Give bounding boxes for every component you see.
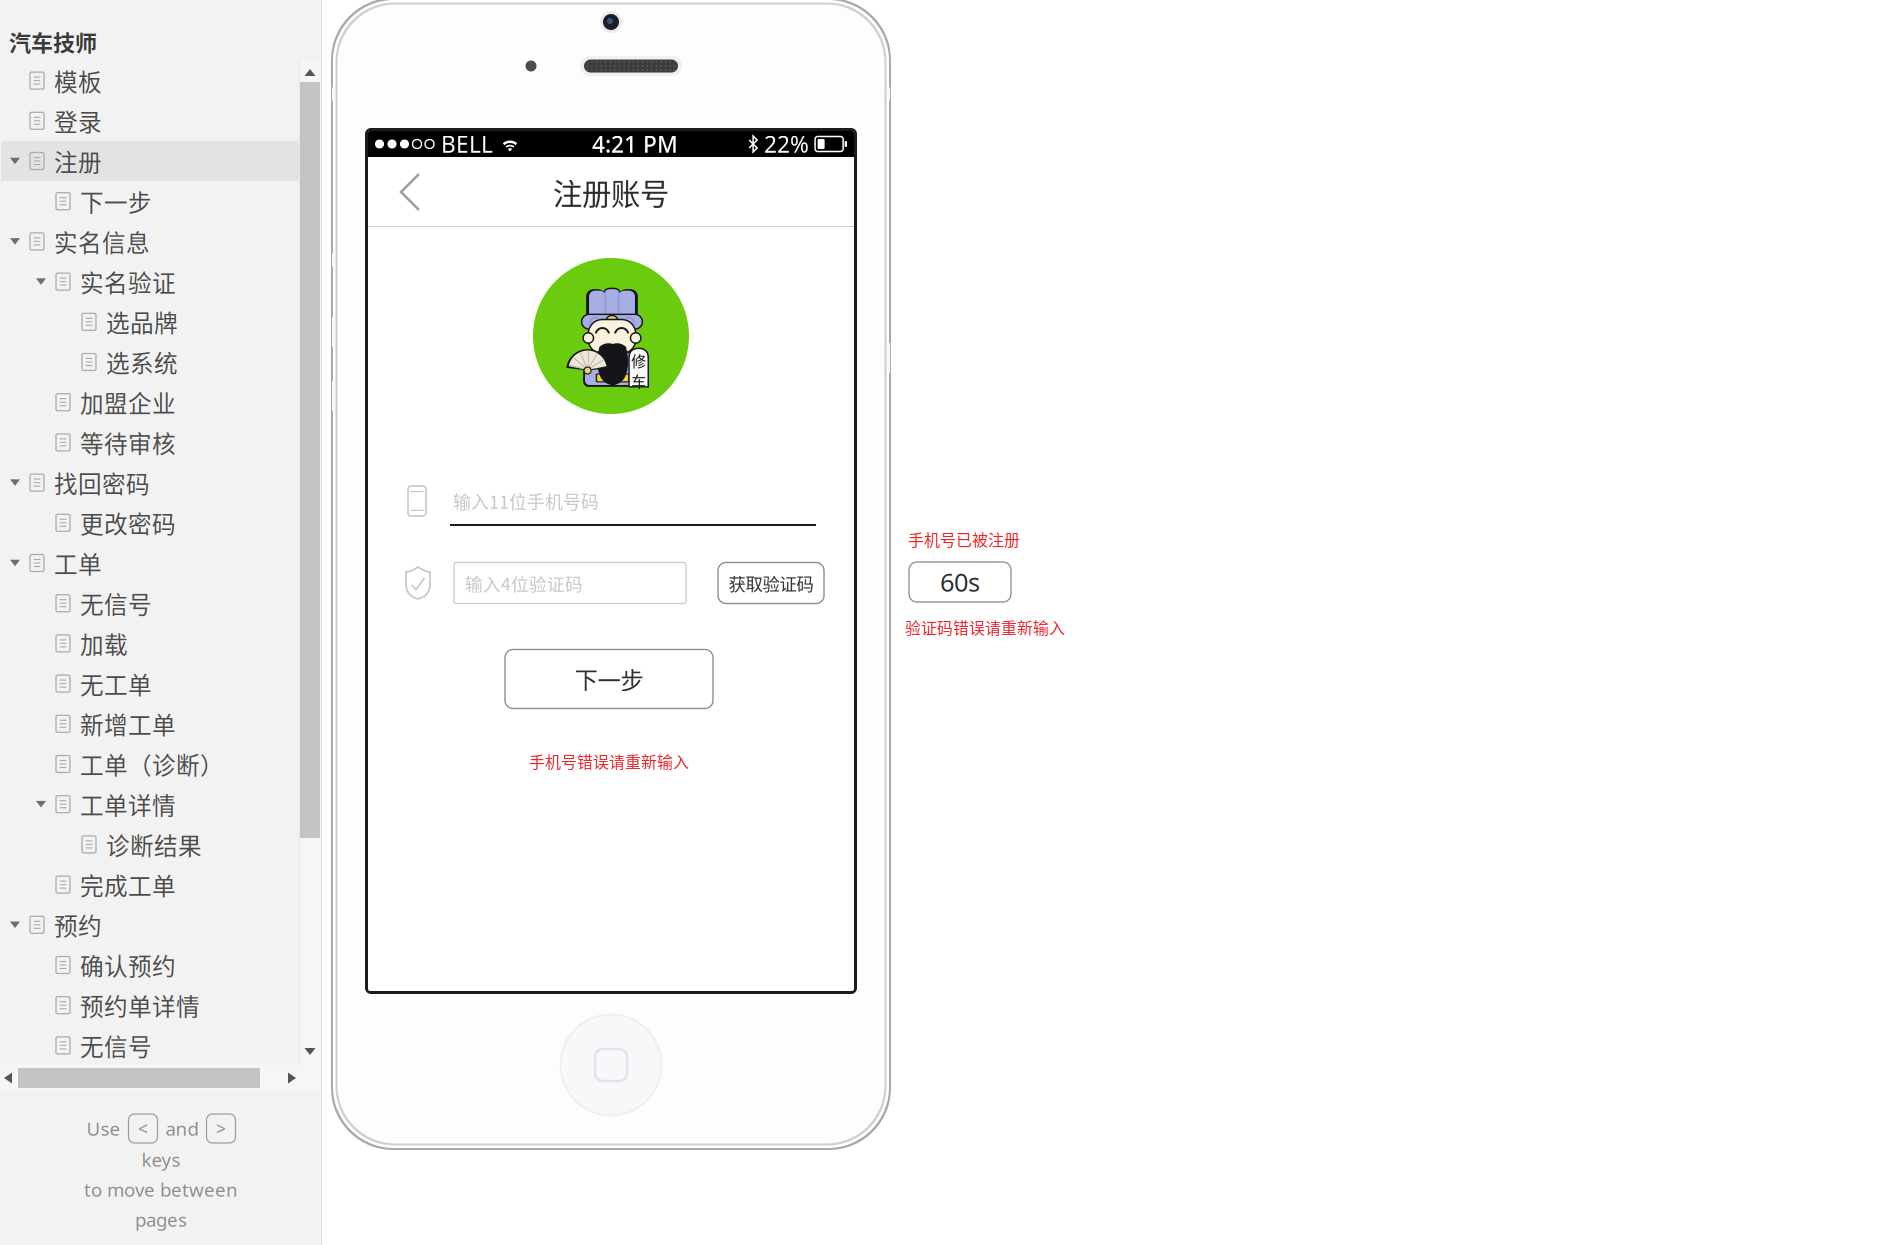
- staticText: 60s: [940, 565, 980, 599]
- staticText: >: [216, 1117, 226, 1140]
- button[interactable]: 下一步: [505, 649, 713, 708]
- staticText: 输入4位验证码: [465, 570, 583, 596]
- button[interactable]: 诊断结果: [1, 824, 299, 864]
- button[interactable]: 选品牌: [1, 302, 299, 342]
- staticText: 模板: [54, 63, 102, 98]
- staticText: 无信号: [80, 1028, 152, 1062]
- button[interactable]: 获取验证码: [718, 562, 824, 603]
- button[interactable]: 工单（诊断）: [1, 744, 299, 784]
- staticText: 手机号已被注册: [908, 527, 1020, 551]
- button[interactable]: 找回密码: [1, 462, 299, 503]
- button[interactable]: 无工单: [1, 663, 299, 704]
- staticText: 4:21 PM: [592, 129, 678, 159]
- staticText: 选系统: [106, 345, 178, 379]
- staticText: 22%: [764, 129, 809, 159]
- staticText: <: [138, 1117, 148, 1140]
- button[interactable]: 完成工单: [1, 864, 299, 905]
- button[interactable]: 选系统: [1, 342, 299, 382]
- staticText: 无信号: [80, 586, 152, 620]
- staticText: 验证码错误请重新输入: [905, 615, 1065, 638]
- staticText: 等待审核: [80, 425, 176, 459]
- button[interactable]: 下一步: [1, 181, 299, 221]
- button[interactable]: 无信号: [1, 583, 299, 623]
- button[interactable]: 注册: [1, 141, 299, 181]
- staticText: 工单详情: [80, 787, 176, 821]
- staticText: 工单（诊断）: [80, 747, 224, 781]
- button[interactable]: 预约: [1, 905, 299, 945]
- button[interactable]: 加载: [1, 623, 299, 663]
- staticText: keys: [141, 1147, 180, 1172]
- button[interactable]: 等待审核: [1, 422, 299, 462]
- button[interactable]: 新增工单: [1, 704, 299, 744]
- staticText: 加载: [80, 626, 128, 660]
- button[interactable]: 实名验证: [1, 261, 299, 302]
- staticText: 诊断结果: [106, 827, 202, 861]
- staticText: pages: [135, 1207, 187, 1232]
- staticText: 下一步: [574, 662, 643, 696]
- staticText: 实名验证: [80, 264, 176, 299]
- button[interactable]: 确认预约: [1, 945, 299, 985]
- staticText: 注册账号: [553, 171, 669, 213]
- staticText: 预约单详情: [80, 988, 200, 1022]
- staticText: 选品牌: [106, 305, 178, 339]
- staticText: 找回密码: [54, 465, 150, 500]
- button[interactable]: 加盟企业: [1, 382, 299, 422]
- staticText: 更改密码: [80, 506, 176, 540]
- button[interactable]: 工单详情: [1, 784, 299, 824]
- button[interactable]: 模板: [1, 60, 299, 101]
- staticText: 汽车技师: [9, 26, 97, 57]
- button[interactable]: 无信号: [1, 1025, 299, 1065]
- button[interactable]: 工单: [1, 543, 299, 583]
- staticText: 修: [638, 353, 658, 382]
- staticText: 下一步: [80, 184, 152, 218]
- staticText: 完成工单: [80, 867, 176, 902]
- button[interactable]: 60s: [909, 562, 1011, 602]
- staticText: 输入11位手机号码: [453, 488, 599, 514]
- staticText: 加盟企业: [80, 385, 176, 419]
- staticText: 登录: [54, 104, 102, 138]
- staticText: 工单: [54, 546, 102, 580]
- staticText: 预约: [54, 908, 102, 942]
- staticText: 手机号错误请重新输入: [529, 749, 689, 772]
- staticText: 实名信息: [54, 224, 150, 258]
- staticText: 新增工单: [80, 707, 176, 741]
- button[interactable]: 更改密码: [1, 503, 299, 543]
- staticText: and: [165, 1116, 198, 1141]
- staticText: 无工单: [80, 666, 152, 701]
- button[interactable]: 登录: [1, 101, 299, 141]
- button[interactable]: 预约单详情: [1, 985, 299, 1025]
- button[interactable]: Back: [368, 157, 442, 227]
- button[interactable]: 实名信息: [1, 221, 299, 261]
- staticText: BELL: [441, 129, 493, 159]
- staticText: 确认预约: [80, 948, 176, 982]
- staticText: 获取验证码: [728, 570, 813, 596]
- staticText: Use: [86, 1116, 120, 1141]
- staticText: 车: [638, 381, 658, 410]
- staticText: to move between: [84, 1177, 238, 1202]
- staticText: 注册: [54, 144, 102, 178]
